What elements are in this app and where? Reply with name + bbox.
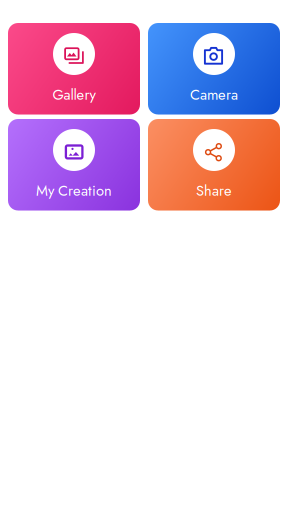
staticText: My Creation: [36, 180, 112, 201]
button[interactable]: Camera: [148, 23, 280, 114]
button[interactable]: Gallery: [8, 23, 140, 114]
button[interactable]: Share: [148, 119, 280, 210]
staticText: Camera: [190, 84, 238, 105]
staticText: Gallery: [52, 84, 95, 105]
button[interactable]: My Creation: [8, 119, 140, 210]
staticText: Share: [196, 180, 232, 201]
